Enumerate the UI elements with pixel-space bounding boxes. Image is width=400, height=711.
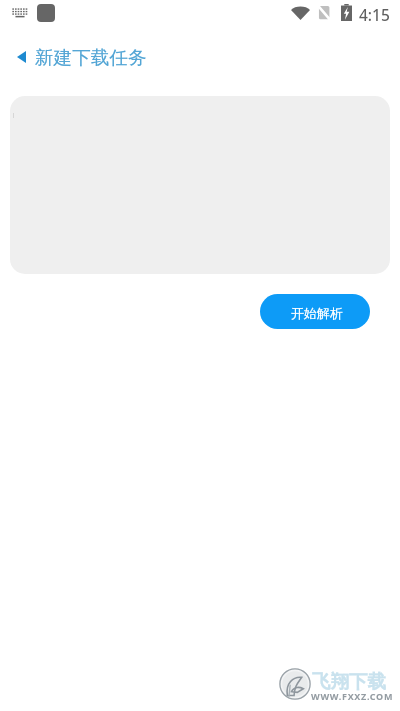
button[interactable]: 开始解析 bbox=[260, 294, 370, 329]
staticText: 飞翔下载 bbox=[312, 670, 386, 693]
staticText: 开始解析 bbox=[291, 305, 343, 321]
staticText: 4:15 bbox=[359, 4, 390, 22]
staticText: WWW.FXXZ.COM bbox=[311, 690, 394, 702]
button[interactable]: Back bbox=[8, 38, 156, 72]
staticText: 新建下载任务 bbox=[35, 46, 147, 69]
